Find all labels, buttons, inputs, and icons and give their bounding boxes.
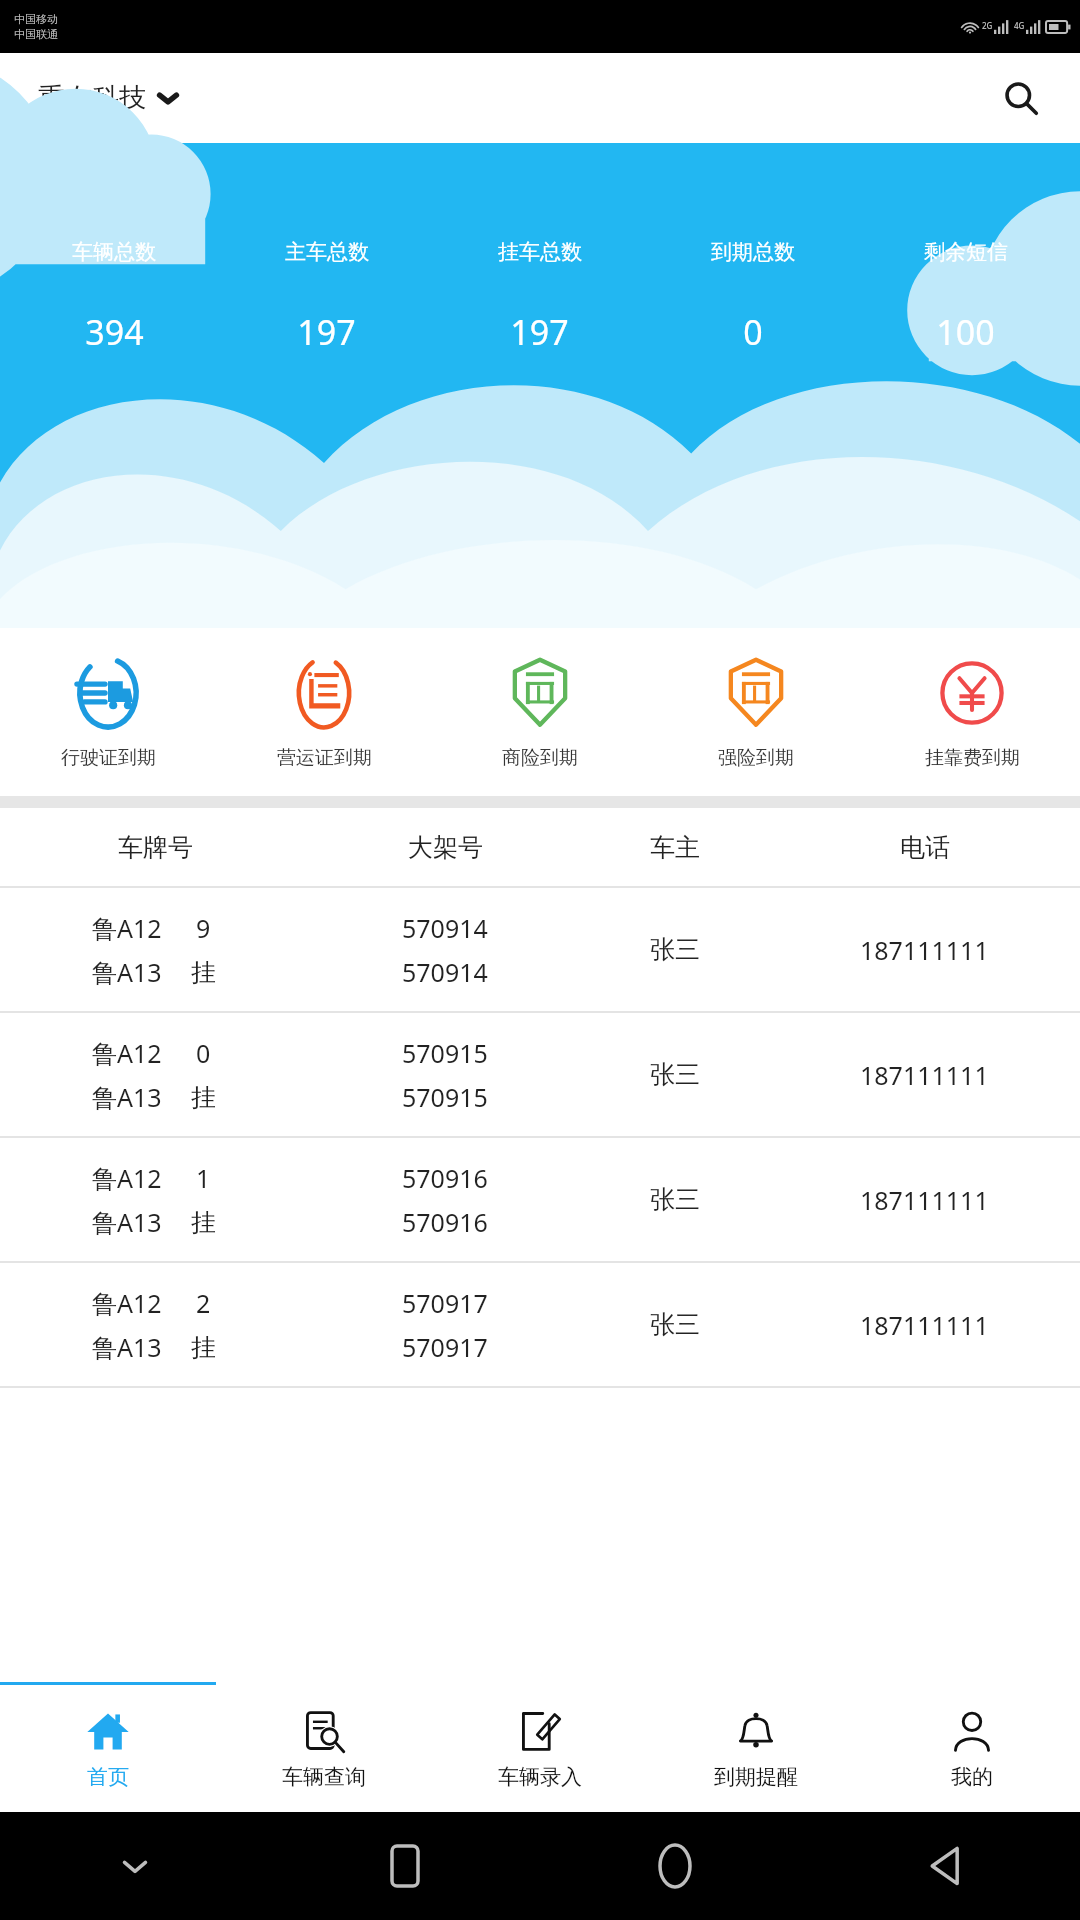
staticText: 营运证到期 bbox=[277, 746, 372, 770]
staticText: 鲁A13 bbox=[92, 1080, 162, 1114]
staticText: 大架号 bbox=[408, 832, 483, 863]
staticText: 570917 bbox=[402, 1330, 488, 1364]
staticText: 570917 bbox=[402, 1286, 488, 1320]
staticText: 车辆录入 bbox=[498, 1764, 582, 1790]
staticText: 394 bbox=[85, 309, 144, 355]
staticText: 挂 bbox=[191, 1332, 216, 1363]
staticText: 到期提醒 bbox=[714, 1764, 798, 1790]
button[interactable]: 到期提醒 bbox=[648, 1685, 864, 1812]
staticText: 100 bbox=[936, 309, 995, 355]
staticText: 2G bbox=[982, 20, 993, 31]
staticText: 到期总数 bbox=[711, 239, 795, 265]
staticText: 187111111 bbox=[860, 1308, 989, 1342]
staticText: 1 bbox=[196, 1161, 211, 1195]
button[interactable]: 行驶证到期 bbox=[0, 652, 216, 774]
button[interactable]: 鲁A12 bbox=[0, 1138, 1080, 1263]
staticText: 570916 bbox=[402, 1161, 488, 1195]
staticText: 187111111 bbox=[860, 1183, 989, 1217]
staticText: 强险到期 bbox=[718, 746, 794, 770]
staticText: 主车总数 bbox=[285, 239, 369, 265]
button[interactable]: 首页 bbox=[0, 1685, 216, 1812]
staticText: 张三 bbox=[650, 1309, 700, 1340]
button[interactable]: 鲁A12 bbox=[0, 1263, 1080, 1388]
staticText: 9 bbox=[196, 911, 211, 945]
staticText: 570915 bbox=[402, 1036, 488, 1070]
staticText: 4G bbox=[1014, 20, 1025, 31]
staticText: 0 bbox=[196, 1036, 211, 1070]
staticText: 我的 bbox=[951, 1764, 993, 1790]
staticText: 电话 bbox=[900, 832, 950, 863]
staticText: 鲁A12 bbox=[92, 911, 162, 945]
staticText: 挂 bbox=[191, 1082, 216, 1113]
button[interactable]: 我的 bbox=[864, 1685, 1080, 1812]
staticText: 鲁A12 bbox=[92, 1286, 162, 1320]
staticText: 车主 bbox=[650, 832, 700, 863]
staticText: 0 bbox=[743, 309, 763, 355]
button[interactable]: 强险到期 bbox=[648, 652, 864, 774]
button[interactable]: 重友科技 bbox=[38, 81, 178, 115]
button[interactable]: 车辆查询 bbox=[216, 1685, 432, 1812]
staticText: 中国移动 bbox=[14, 12, 58, 26]
staticText: 挂车总数 bbox=[498, 239, 582, 265]
button[interactable]: 营运证到期 bbox=[216, 652, 432, 774]
staticText: 鲁A13 bbox=[92, 1205, 162, 1239]
staticText: 187111111 bbox=[860, 933, 989, 967]
button[interactable]: 挂靠费到期 bbox=[864, 652, 1080, 774]
staticText: 鲁A12 bbox=[92, 1161, 162, 1195]
staticText: 挂 bbox=[191, 957, 216, 988]
staticText: 车辆查询 bbox=[282, 1764, 366, 1790]
staticText: 重友科技 bbox=[38, 81, 146, 115]
staticText: 张三 bbox=[650, 1059, 700, 1090]
staticText: 挂 bbox=[191, 1207, 216, 1238]
staticText: 570916 bbox=[402, 1205, 488, 1239]
button[interactable]: 商险到期 bbox=[432, 652, 648, 774]
button[interactable]: 鲁A12 bbox=[0, 1013, 1080, 1138]
button[interactable]: Search bbox=[996, 73, 1046, 123]
staticText: 197 bbox=[510, 309, 569, 355]
staticText: 张三 bbox=[650, 934, 700, 965]
staticText: 首页 bbox=[87, 1764, 129, 1790]
staticText: 中国联通 bbox=[14, 27, 58, 41]
staticText: 187111111 bbox=[860, 1058, 989, 1092]
staticText: 张三 bbox=[650, 1184, 700, 1215]
staticText: 剩余短信 bbox=[924, 239, 1008, 265]
staticText: 行驶证到期 bbox=[61, 746, 156, 770]
staticText: 挂靠费到期 bbox=[925, 746, 1020, 770]
button[interactable]: 车辆录入 bbox=[432, 1685, 648, 1812]
staticText: 鲁A13 bbox=[92, 955, 162, 989]
staticText: 2 bbox=[196, 1286, 211, 1320]
staticText: 570914 bbox=[402, 911, 488, 945]
staticText: 鲁A13 bbox=[92, 1330, 162, 1364]
staticText: 车牌号 bbox=[118, 832, 193, 863]
staticText: 鲁A12 bbox=[92, 1036, 162, 1070]
staticText: 570914 bbox=[402, 955, 488, 989]
staticText: 商险到期 bbox=[502, 746, 578, 770]
staticText: 197 bbox=[297, 309, 356, 355]
staticText: 570915 bbox=[402, 1080, 488, 1114]
staticText: 车辆总数 bbox=[72, 239, 156, 265]
button[interactable]: 鲁A12 bbox=[0, 888, 1080, 1013]
